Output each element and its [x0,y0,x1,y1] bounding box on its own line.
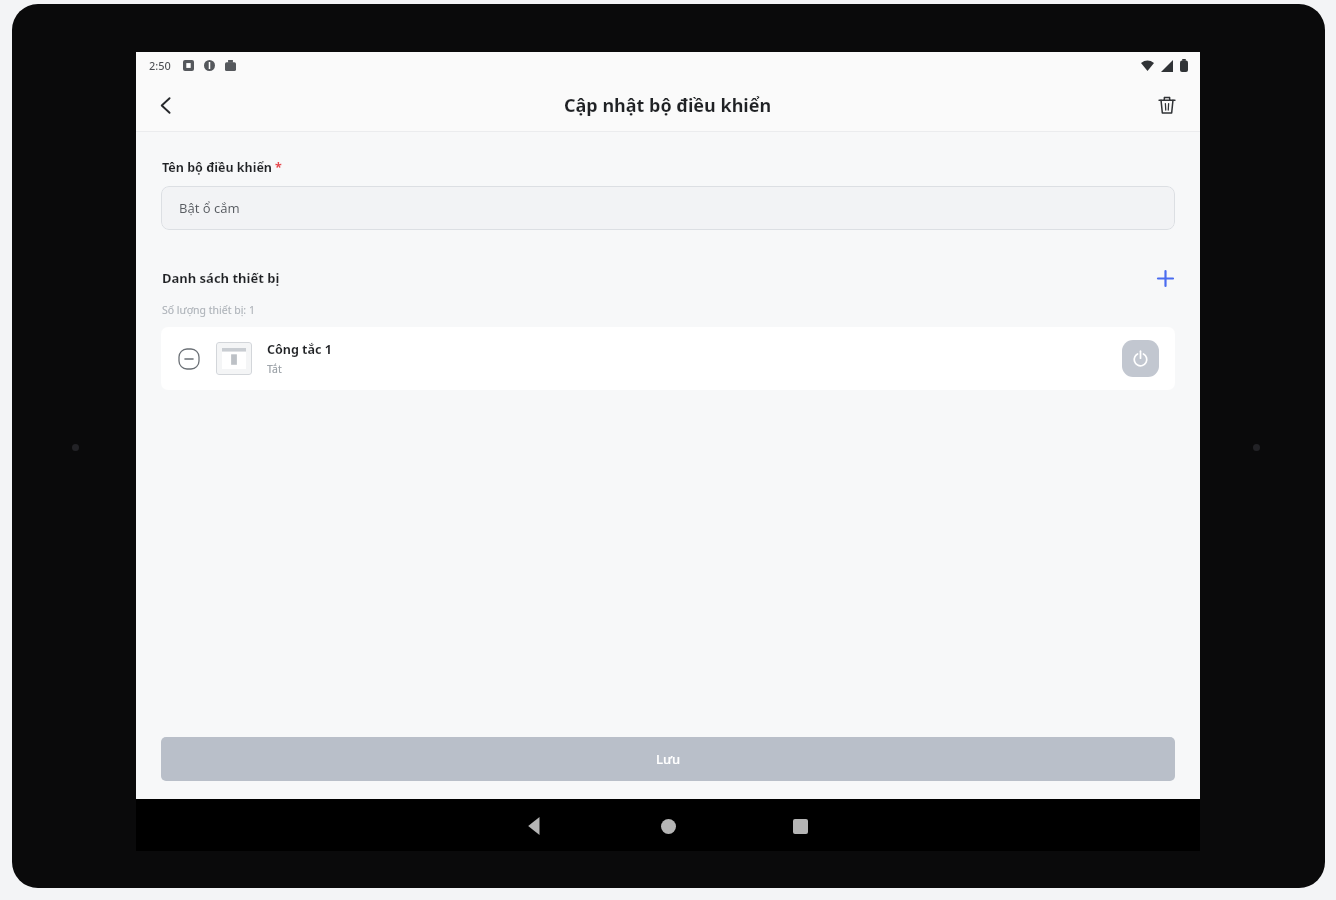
button[interactable]: Delete [1146,84,1188,126]
button[interactable]: Back [145,84,187,126]
staticText: Số lượng thiết bị: 1 [162,303,255,317]
button[interactable]: Power toggle [1122,340,1159,377]
button[interactable]: Lưu [161,737,1175,781]
button[interactable]: Remove device [177,347,201,371]
button[interactable]: Remove device [161,327,1175,390]
staticText: Công tắc 1 [267,341,332,358]
staticText: Bật ổ cắm [179,199,240,217]
button[interactable]: Back [512,803,558,849]
staticText: Tắt [267,362,282,376]
staticText: Cập nhật bộ điều khiển [564,93,772,118]
button[interactable]: Bật ổ cắm [161,186,1175,230]
staticText: 2:50 [149,58,171,73]
staticText: Danh sách thiết bị [162,269,280,287]
button[interactable]: Home [645,803,691,849]
staticText: * [275,159,282,176]
staticText: Tên bộ điều khiển [162,159,272,176]
staticText: Lưu [656,750,681,768]
button[interactable]: Recent apps [777,803,823,849]
button[interactable]: Add device [1148,261,1182,295]
